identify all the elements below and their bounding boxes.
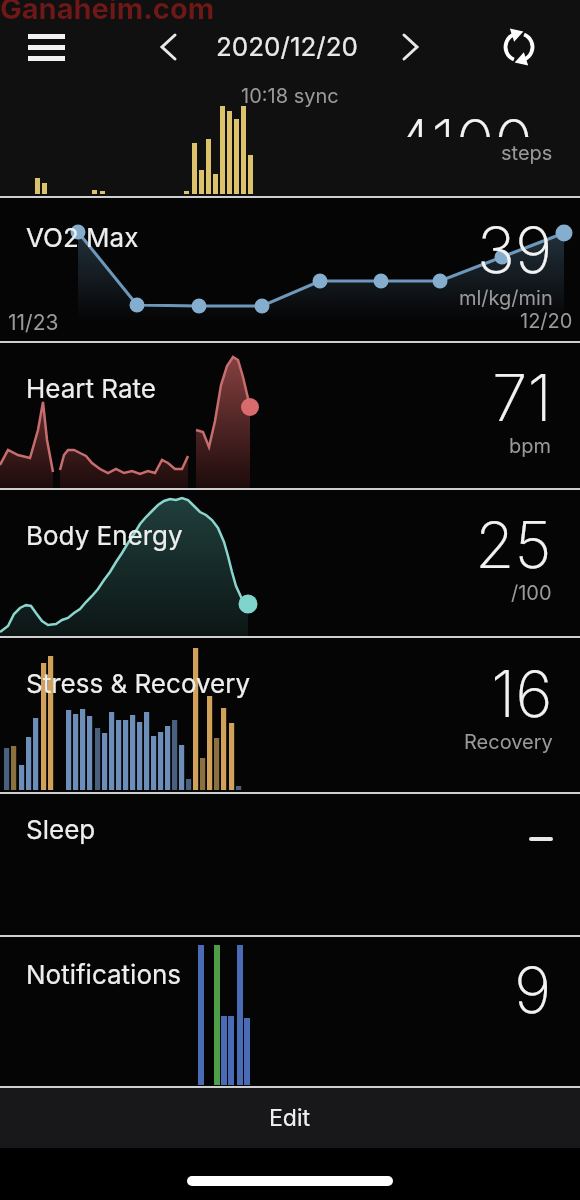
staticText: 39 xyxy=(477,211,553,288)
staticText: Ganaheim.com xyxy=(0,0,215,26)
button[interactable] xyxy=(20,26,72,68)
staticText: Sleep xyxy=(26,814,96,845)
staticText: 12/20 xyxy=(520,309,573,333)
button[interactable]: VO2 Max xyxy=(0,198,580,341)
staticText: 9 xyxy=(514,951,552,1028)
staticText: Edit xyxy=(269,1104,311,1132)
staticText: 71 xyxy=(492,359,552,436)
button[interactable] xyxy=(497,25,541,69)
button[interactable]: Sleep xyxy=(0,794,580,935)
button[interactable]: Heart Rate xyxy=(0,343,580,488)
button[interactable]: Edit xyxy=(0,1088,580,1148)
staticText: 16 xyxy=(491,655,553,732)
staticText: Recovery xyxy=(464,730,553,754)
staticText: ml/kg/min xyxy=(459,286,553,310)
staticText: 4100 xyxy=(393,104,533,137)
staticText: bpm xyxy=(509,434,552,458)
staticText: Stress & Recovery xyxy=(26,668,251,699)
staticText: 10:18 sync xyxy=(241,84,339,108)
staticText: Body Energy xyxy=(26,520,183,551)
staticText: 25 xyxy=(475,506,552,583)
button[interactable] xyxy=(152,30,184,64)
staticText: /100 xyxy=(511,581,552,605)
staticText: Heart Rate xyxy=(26,373,156,404)
staticText: Notifications xyxy=(26,959,182,990)
button[interactable]: 2020/12/20 xyxy=(216,31,358,62)
staticText: 11/23 xyxy=(8,310,59,335)
staticText: steps xyxy=(501,141,553,165)
button[interactable]: Body Energy xyxy=(0,490,580,636)
button[interactable] xyxy=(395,30,427,64)
button[interactable]: Notifications xyxy=(0,937,580,1086)
button[interactable]: Stress & Recovery xyxy=(0,638,580,792)
staticText: VO2 Max xyxy=(26,222,139,253)
